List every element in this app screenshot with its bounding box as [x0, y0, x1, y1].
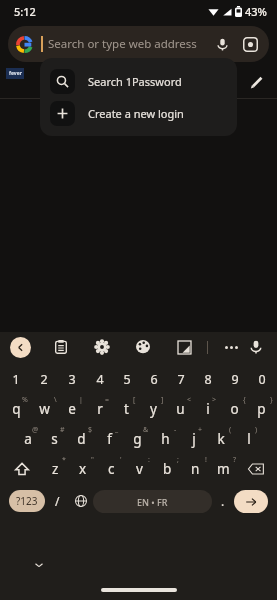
staticText: u — [176, 400, 185, 418]
staticText: j — [192, 430, 196, 448]
button[interactable]: y — [140, 394, 167, 424]
button[interactable]: v — [125, 454, 153, 484]
staticText: 3 — [68, 371, 76, 388]
button[interactable]: k — [207, 424, 235, 454]
button[interactable]: Backspace — [237, 454, 274, 484]
button[interactable]: l — [235, 424, 263, 454]
button[interactable]: 7 — [167, 364, 194, 394]
staticText: Search or type web address — [48, 36, 211, 52]
staticText: / — [55, 493, 60, 509]
staticText: 5:12 — [14, 4, 36, 19]
button[interactable]: b — [153, 454, 181, 484]
staticText: * — [62, 455, 66, 465]
button[interactable]: s — [41, 424, 68, 454]
button[interactable]: e — [58, 394, 86, 424]
button[interactable]: Clipboard — [50, 336, 72, 358]
staticText: " — [91, 455, 94, 465]
staticText: { — [243, 395, 246, 405]
button[interactable]: Resize keyboard — [173, 336, 195, 358]
staticText: 43% — [245, 4, 267, 19]
button[interactable]: z — [41, 454, 69, 484]
button[interactable]: 5 — [113, 364, 140, 394]
button[interactable]: f — [95, 424, 123, 454]
button[interactable]: j — [179, 424, 207, 454]
button[interactable]: Edit — [247, 72, 267, 92]
button[interactable]: Theme — [132, 336, 154, 358]
staticText: + — [198, 425, 203, 435]
staticText: } — [270, 395, 273, 405]
staticText: p — [257, 400, 266, 418]
staticText: > — [212, 395, 217, 405]
button[interactable]: 9 — [221, 364, 248, 394]
button[interactable]: q — [2, 394, 30, 424]
staticText: w — [39, 400, 50, 418]
button[interactable]: r — [86, 394, 113, 424]
button[interactable]: . — [212, 487, 234, 515]
staticText: 9 — [231, 371, 239, 388]
staticText: l — [247, 430, 251, 448]
staticText: | — [79, 395, 83, 405]
button[interactable]: u — [167, 394, 194, 424]
staticText: 4 — [96, 371, 104, 388]
staticText: EN • FR — [137, 496, 168, 508]
button[interactable]: m — [209, 454, 237, 484]
staticText: f — [107, 430, 112, 448]
button[interactable]: Voice input — [245, 336, 267, 358]
button[interactable]: 6 — [140, 364, 167, 394]
button[interactable]: Create a new login — [40, 97, 237, 129]
staticText: & — [143, 425, 149, 435]
staticText: s — [51, 430, 58, 448]
button[interactable]: 4 — [86, 364, 113, 394]
button[interactable]: a — [14, 424, 41, 454]
button[interactable]: EN • FR — [93, 490, 212, 513]
staticText: ? — [233, 455, 237, 465]
staticText: b — [163, 460, 172, 478]
button[interactable]: 3 — [58, 364, 86, 394]
button[interactable]: o — [221, 394, 248, 424]
button[interactable]: h — [151, 424, 179, 454]
staticText: ( — [229, 425, 232, 435]
button[interactable]: More options — [220, 336, 242, 358]
button[interactable]: 0 — [248, 364, 275, 394]
staticText: fever — [9, 70, 22, 77]
button[interactable]: d — [68, 424, 95, 454]
staticText: % — [22, 395, 28, 405]
staticText: ) — [255, 425, 258, 435]
button[interactable]: ?123 — [9, 490, 45, 512]
button[interactable]: g — [123, 424, 151, 454]
button[interactable]: Change language — [69, 487, 93, 515]
staticText: t — [124, 400, 129, 418]
staticText: $ — [88, 425, 93, 435]
button[interactable]: 1 — [2, 364, 30, 394]
staticText: r — [97, 400, 103, 418]
button[interactable]: / — [45, 487, 69, 515]
button[interactable]: Back — [10, 337, 31, 358]
staticText: : — [148, 455, 150, 465]
button[interactable]: Voice search — [211, 33, 233, 55]
button[interactable]: p — [248, 394, 275, 424]
button[interactable]: w — [30, 394, 58, 424]
button[interactable]: Search 1Password — [40, 65, 237, 97]
button[interactable]: Search with camera — [239, 33, 261, 55]
button[interactable]: Hide keyboard — [30, 556, 48, 574]
staticText: y — [150, 400, 157, 418]
button[interactable]: Shift — [3, 454, 41, 484]
button[interactable]: n — [181, 454, 209, 484]
button[interactable]: 8 — [194, 364, 221, 394]
button[interactable]: Go — [234, 490, 268, 513]
button[interactable]: x — [69, 454, 97, 484]
staticText: Search 1Password — [88, 74, 182, 89]
button[interactable]: Search or type web address — [8, 26, 269, 62]
button[interactable]: t — [113, 394, 140, 424]
button[interactable]: i — [194, 394, 221, 424]
button[interactable]: 2 — [30, 364, 58, 394]
button[interactable]: c — [97, 454, 125, 484]
staticText: m — [217, 460, 230, 478]
staticText: v — [136, 460, 143, 478]
staticText: d — [77, 430, 86, 448]
button[interactable]: Settings — [91, 336, 113, 358]
staticText: e — [68, 400, 76, 418]
staticText: 7 — [177, 371, 185, 388]
staticText: ' — [120, 455, 122, 465]
staticText: a — [24, 430, 32, 448]
